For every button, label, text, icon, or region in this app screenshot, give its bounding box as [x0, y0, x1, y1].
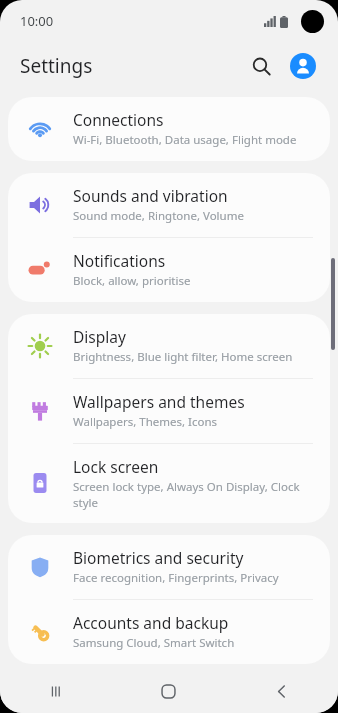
staticText: Connections — [73, 109, 164, 130]
staticText: Notifications — [73, 250, 166, 271]
button[interactable]: Biometrics and security — [8, 535, 330, 599]
staticText: Biometrics and security — [73, 547, 244, 568]
button[interactable]: Account — [284, 47, 322, 85]
button[interactable]: Recent apps — [0, 669, 112, 713]
staticText: Wi-Fi, Bluetooth, Data usage, Flight mod… — [73, 132, 297, 148]
button[interactable]: Search — [242, 47, 280, 85]
button[interactable]: Notifications — [8, 238, 330, 302]
button[interactable]: Connections — [8, 97, 330, 161]
staticText: Sound mode, Ringtone, Volume — [73, 208, 244, 224]
staticText: Accounts and backup — [73, 612, 229, 633]
staticText: Sounds and vibration — [73, 185, 228, 206]
button[interactable]: Home — [112, 669, 225, 713]
button[interactable]: Sounds and vibration — [8, 173, 330, 237]
staticText: Screen lock type, Always On Display, Clo… — [73, 479, 314, 510]
button[interactable]: Accounts and backup — [8, 600, 330, 664]
staticText: Block, allow, prioritise — [73, 273, 191, 289]
staticText: Display — [73, 326, 126, 347]
button[interactable]: Wallpapers and themes — [8, 379, 330, 443]
staticText: Brightness, Blue light filter, Home scre… — [73, 349, 293, 365]
button[interactable]: Display — [8, 314, 330, 378]
staticText: Face recognition, Fingerprints, Privacy — [73, 570, 279, 586]
staticText: Lock screen — [73, 456, 159, 477]
staticText: Wallpapers, Themes, Icons — [73, 414, 218, 430]
staticText: Settings — [20, 53, 93, 79]
staticText: 10:00 — [20, 12, 54, 30]
staticText: Samsung Cloud, Smart Switch — [73, 635, 235, 651]
button[interactable]: Lock screen — [8, 444, 330, 523]
staticText: Wallpapers and themes — [73, 391, 245, 412]
button[interactable]: Back — [225, 669, 338, 713]
